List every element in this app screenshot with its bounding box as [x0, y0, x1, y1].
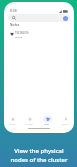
staticText: Nodes [26, 123, 33, 126]
staticText: More [62, 123, 68, 126]
staticText: View the physical nodes of the cluster [10, 147, 68, 164]
button[interactable]: 192.168.0.16 [4, 29, 74, 39]
button[interactable]: Pods [38, 114, 56, 128]
button[interactable]: Search [8, 14, 70, 22]
staticText: Nodes [10, 23, 20, 27]
staticText: 8:08 [10, 8, 17, 13]
other: Search [12, 16, 16, 20]
button[interactable]: Nodes [21, 114, 38, 128]
staticText: online [15, 35, 22, 38]
button[interactable]: More [56, 114, 74, 128]
staticText: Pods [44, 123, 50, 126]
button[interactable]: Account [63, 16, 68, 21]
staticText: 192.168.0.16 [15, 31, 29, 35]
button[interactable]: Home [4, 114, 21, 128]
staticText: Home [9, 123, 16, 126]
